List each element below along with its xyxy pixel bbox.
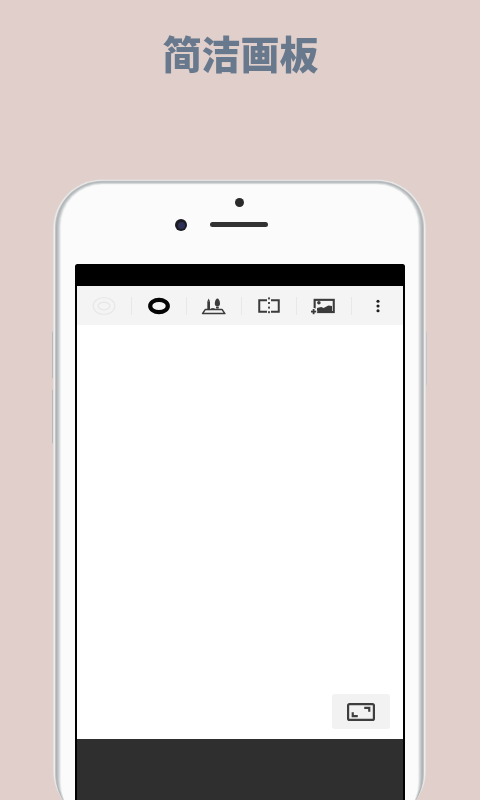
button[interactable]: Enter fullscreen: [332, 694, 390, 729]
button[interactable]: Canvas size: [242, 286, 296, 325]
button[interactable]: Add image: [297, 286, 351, 325]
button[interactable]: More options: [352, 286, 403, 325]
button[interactable]: Shape tool: [132, 286, 186, 325]
button[interactable]: Brush: [187, 286, 241, 325]
staticText: 简洁画板: [162, 24, 319, 80]
